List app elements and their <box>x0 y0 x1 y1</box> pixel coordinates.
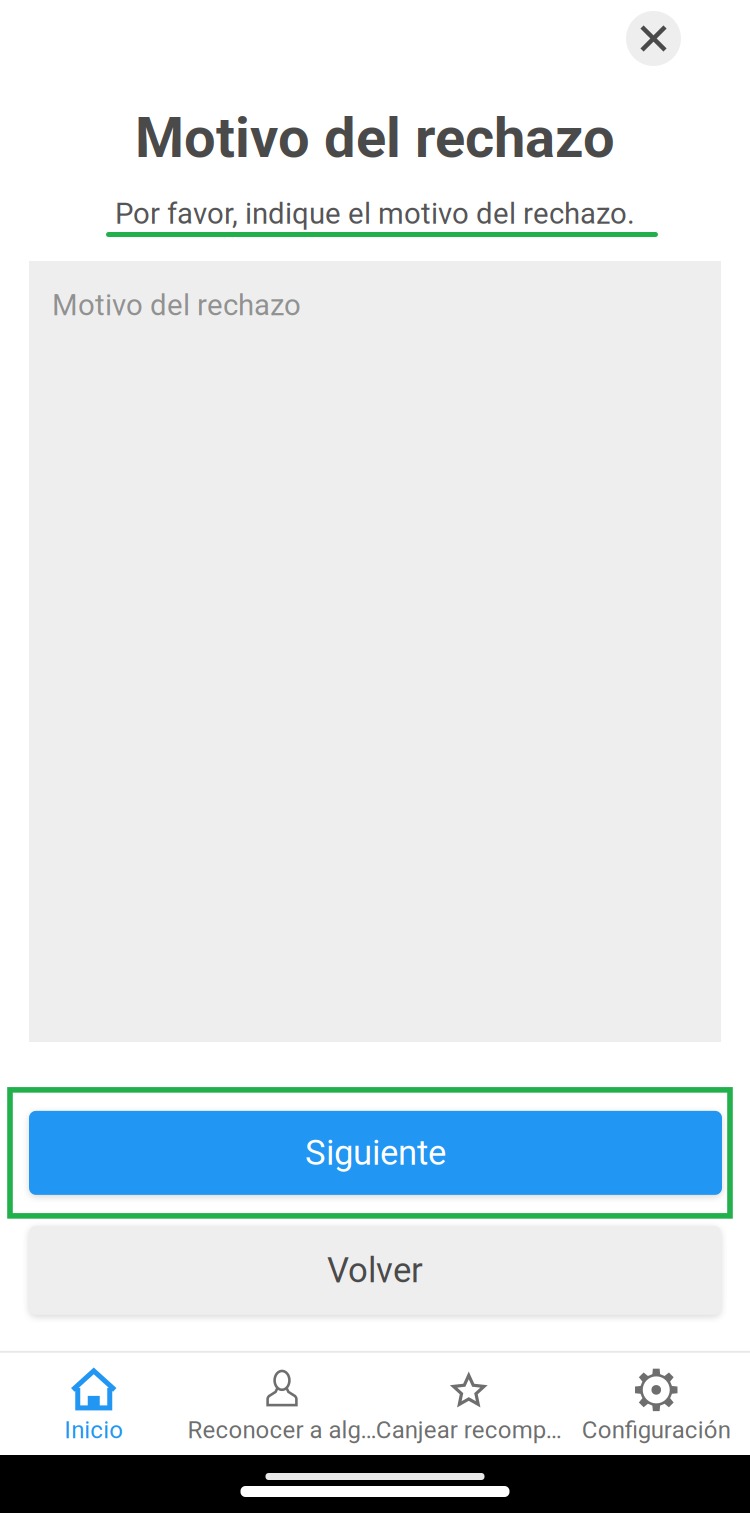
button[interactable]: Canjear recompensas <box>375 1353 562 1455</box>
staticText: Por favor, indique el motivo del rechazo… <box>115 197 635 231</box>
staticText: Siguiente <box>305 1133 446 1173</box>
button[interactable]: Cerrar <box>626 11 681 66</box>
button[interactable]: Configuración <box>562 1353 750 1455</box>
staticText: Volver <box>327 1250 423 1291</box>
button[interactable]: Inicio <box>0 1353 187 1455</box>
button[interactable]: Reconocer a alguien <box>187 1353 375 1455</box>
staticText: Inicio <box>64 1416 123 1444</box>
button[interactable]: Motivo del rechazo <box>29 261 721 1042</box>
button[interactable]: Volver <box>0 1226 750 1315</box>
staticText: Motivo del rechazo <box>52 288 301 322</box>
staticText: Canjear recomp… <box>376 1416 562 1444</box>
staticText: Motivo del rechazo <box>135 105 615 171</box>
button[interactable]: Siguiente <box>0 1090 750 1216</box>
staticText: Reconocer a alg… <box>187 1416 376 1444</box>
staticText: Configuración <box>582 1416 731 1444</box>
